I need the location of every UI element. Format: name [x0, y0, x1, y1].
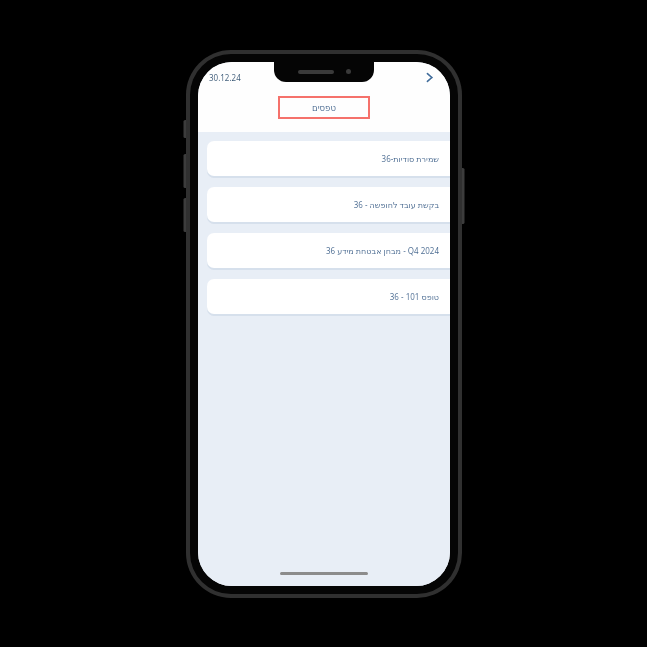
button[interactable]: טופס 101 - 36 [207, 279, 450, 314]
button[interactable]: Next [419, 67, 439, 87]
staticText: 36-שמירת סודיות [381, 153, 439, 164]
button[interactable]: בקשת עובד לחופשה - 36 [207, 187, 450, 222]
button[interactable]: 36-שמירת סודיות [207, 141, 450, 176]
staticText: מבחן אבטחת מידע 36 - Q4 2024 [325, 245, 439, 256]
staticText: בקשת עובד לחופשה - 36 [353, 199, 439, 210]
staticText: טפסים [312, 103, 336, 113]
button[interactable]: מבחן אבטחת מידע 36 - Q4 2024 [207, 233, 450, 268]
button[interactable]: טפסים [278, 96, 370, 119]
staticText: 30.12.24 [209, 72, 241, 83]
staticText: טופס 101 - 36 [389, 291, 439, 302]
